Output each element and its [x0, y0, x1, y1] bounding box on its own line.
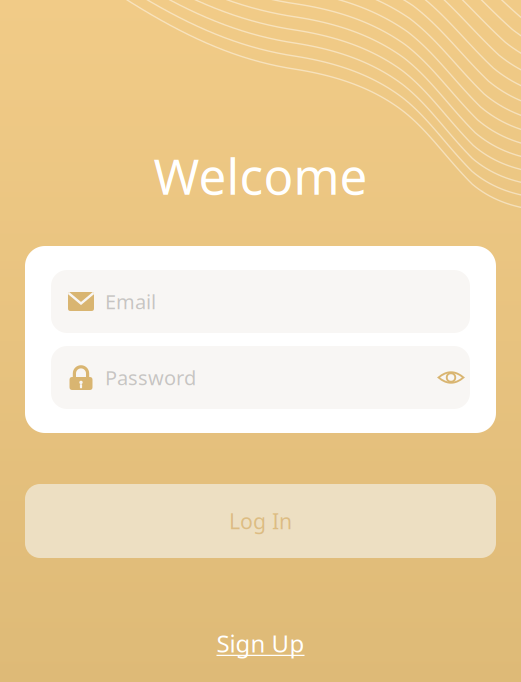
- button[interactable]: Email: [51, 270, 470, 333]
- button[interactable]: Password: [51, 346, 470, 409]
- staticText: Email: [105, 288, 156, 315]
- button[interactable]: Show password: [434, 355, 468, 399]
- button[interactable]: Log In: [25, 484, 496, 558]
- staticText: Log In: [229, 507, 292, 535]
- staticText: Sign Up: [216, 627, 304, 659]
- button[interactable]: Sign Up: [206, 621, 314, 665]
- staticText: Password: [105, 364, 196, 391]
- staticText: Welcome: [153, 143, 367, 208]
